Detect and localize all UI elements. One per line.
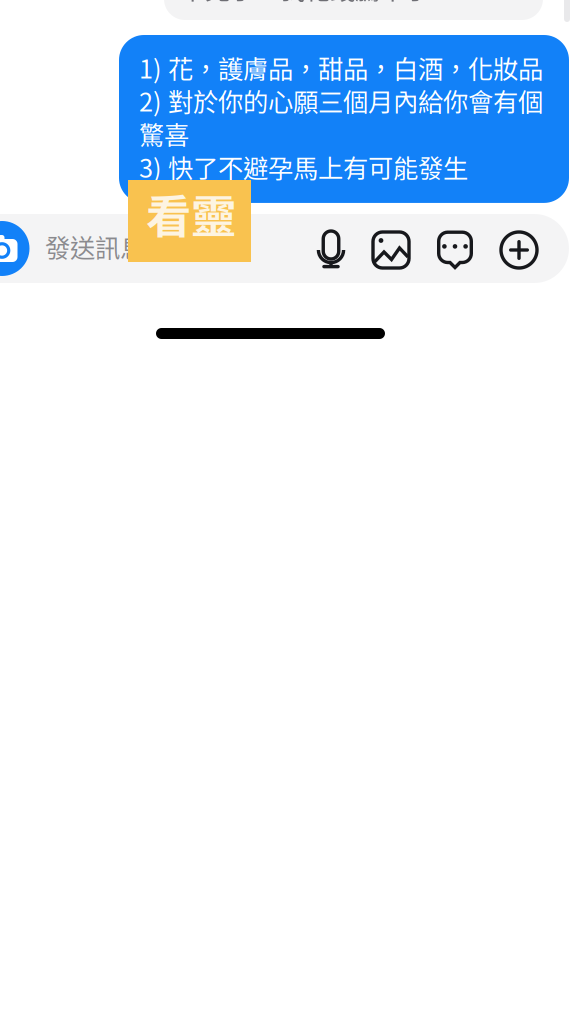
button[interactable]: Photos (373, 232, 409, 268)
button[interactable]: Stickers (437, 230, 473, 269)
staticText: 1) 花，護膚品，甜品，白酒，化妝品 2) 對於你的心願三個月內給你會有個驚喜 … (139, 49, 543, 185)
button[interactable]: Camera (0, 221, 29, 276)
button[interactable]: Message field (0, 214, 569, 283)
button[interactable]: More (501, 232, 537, 268)
button[interactable]: Voice message (317, 232, 345, 268)
staticText: 不見了，我花錢騰不了 (180, 0, 430, 7)
staticText: 發送訊息 (45, 228, 145, 265)
staticText: 看靈 (146, 181, 236, 247)
